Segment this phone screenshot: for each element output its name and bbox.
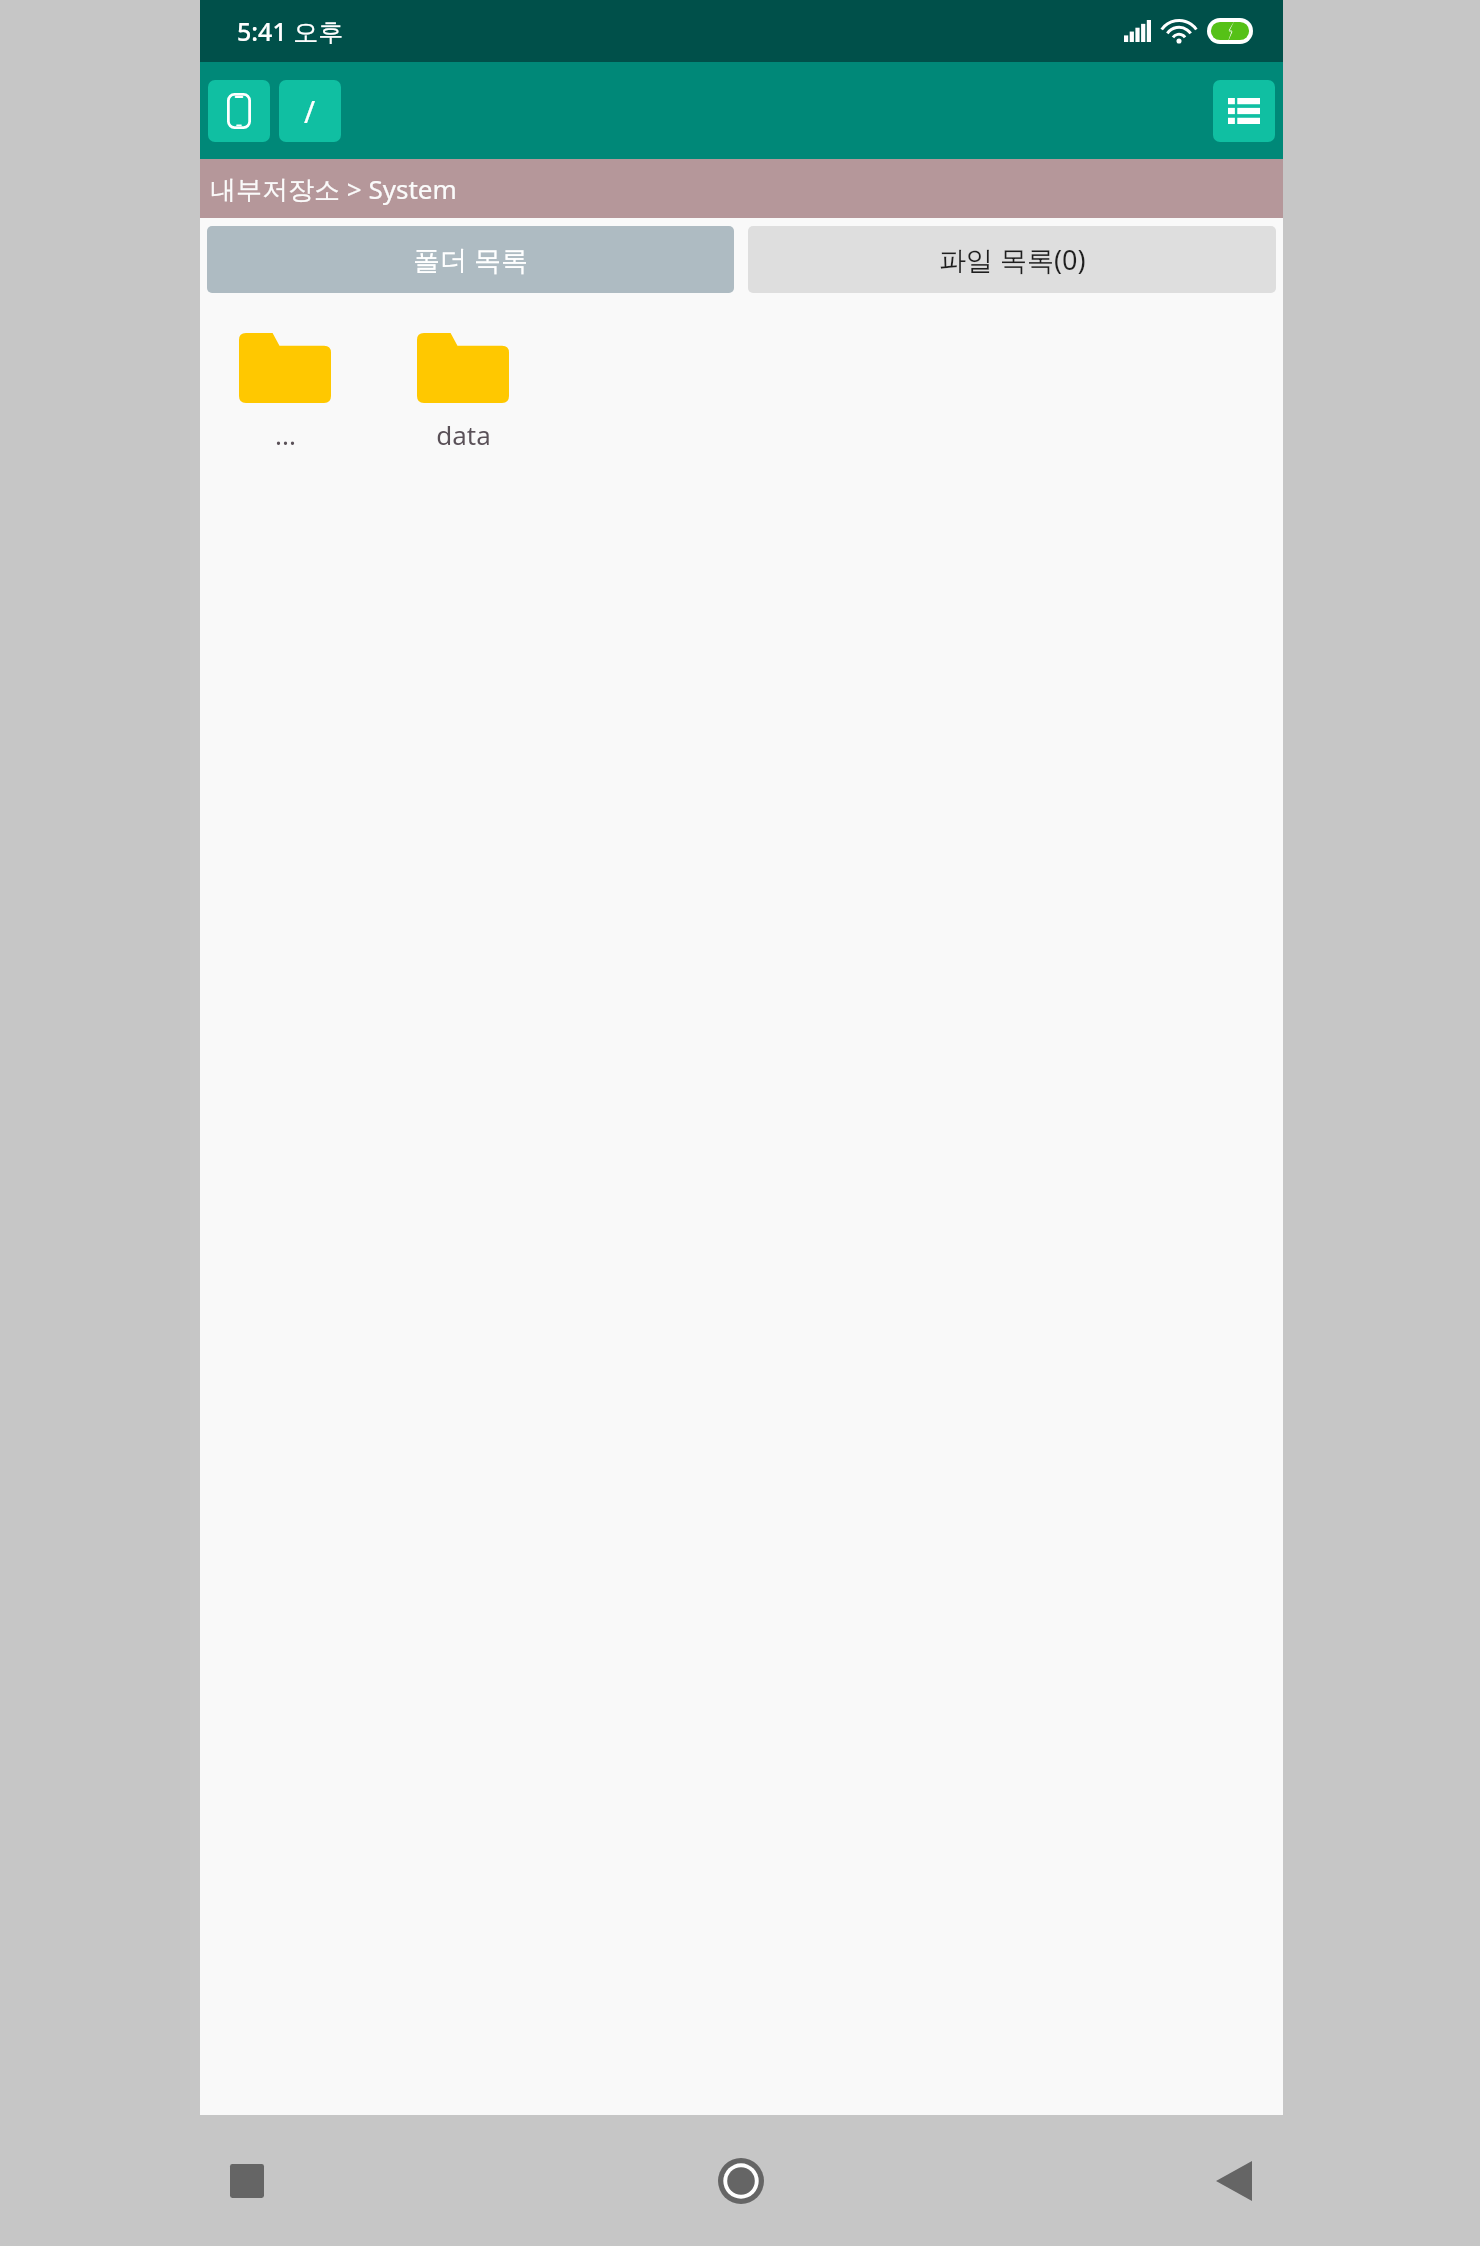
button[interactable]: Recents	[0, 2115, 494, 2246]
button[interactable]: Internal storage	[208, 80, 270, 142]
button[interactable]: Back	[987, 2115, 1480, 2246]
button[interactable]: ...	[226, 329, 344, 452]
staticText: 5:41 오후	[237, 14, 344, 48]
button[interactable]: Home	[494, 2115, 987, 2246]
staticText: data	[436, 417, 491, 452]
staticText: 내부저장소 > System	[210, 171, 457, 207]
button[interactable]: Root	[279, 80, 341, 142]
button[interactable]: data	[404, 329, 522, 452]
button[interactable]: 폴더 목록	[207, 226, 734, 293]
button[interactable]: 파일 목록(0)	[748, 226, 1276, 293]
button[interactable]: 내부저장소 > System	[200, 159, 1283, 218]
staticText: ...	[275, 417, 296, 452]
button[interactable]: List view	[1213, 80, 1275, 142]
staticText: 폴더 목록	[413, 241, 529, 278]
staticText: /	[304, 91, 316, 132]
staticText: 파일 목록(0)	[939, 241, 1086, 278]
